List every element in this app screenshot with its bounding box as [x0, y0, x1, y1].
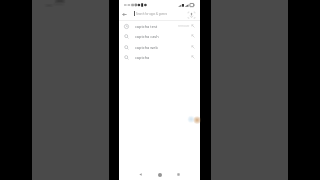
staticText: Search for apps & games [136, 12, 167, 16]
button[interactable]: Home [155, 170, 164, 179]
staticText: captcha [135, 55, 150, 60]
staticText: captcha cash [135, 34, 159, 39]
staticText: remove [178, 24, 190, 28]
button[interactable]: captcha web [119, 42, 200, 52]
button[interactable]: Back [136, 170, 145, 179]
button[interactable]: Voice search [186, 10, 196, 20]
staticText: captcha test [135, 24, 158, 29]
button[interactable]: Recents [174, 170, 183, 179]
button[interactable]: captcha test [119, 21, 200, 31]
staticText: captcha web [135, 45, 158, 50]
button[interactable]: captcha cash [119, 31, 200, 41]
button[interactable]: Back [120, 10, 128, 18]
button[interactable]: captcha [119, 52, 200, 62]
